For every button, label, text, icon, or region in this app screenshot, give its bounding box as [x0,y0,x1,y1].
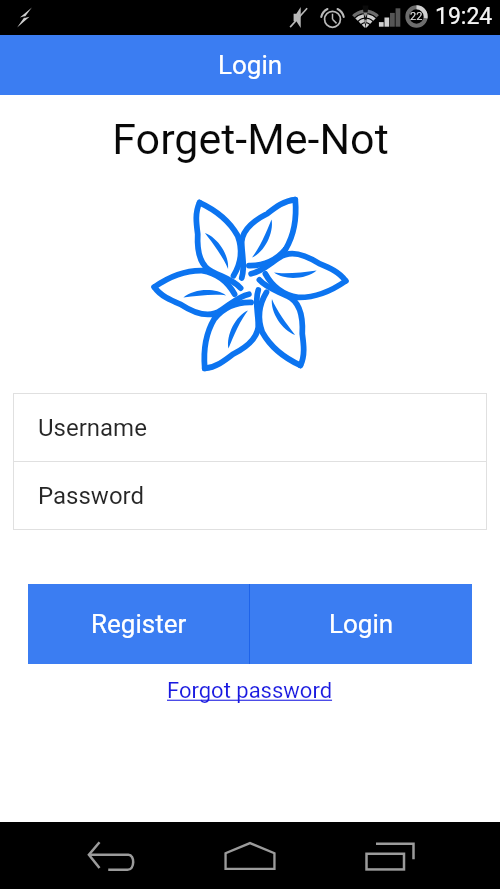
button[interactable]: Back [55,822,167,889]
button[interactable]: Password [14,462,486,529]
staticText: Username [38,414,147,442]
button[interactable]: Username [14,394,486,461]
button[interactable]: Home [194,822,306,889]
button[interactable]: Recent apps [334,822,446,889]
staticText: Password [38,482,145,510]
button[interactable]: Register [28,584,249,664]
staticText: Login [329,609,394,639]
staticText: 19:24 [435,3,493,30]
staticText: Register [91,609,187,639]
staticText: Forget-Me-Not [112,114,389,164]
staticText: 22 [410,10,423,23]
button[interactable]: Forgot password [167,678,333,704]
staticText: Login [218,50,283,80]
button[interactable]: Login [250,584,472,664]
